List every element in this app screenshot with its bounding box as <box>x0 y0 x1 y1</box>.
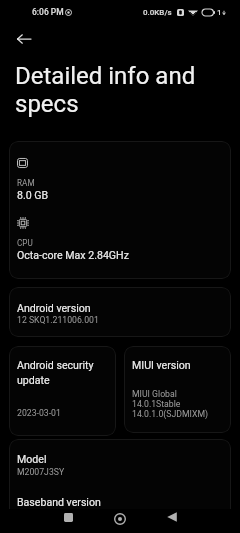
staticText: RAM <box>17 178 35 188</box>
button[interactable]: Back <box>9 24 38 53</box>
button[interactable]: Model <box>9 439 231 519</box>
button[interactable]: Android version <box>9 287 231 337</box>
staticText: 8.0 GB <box>17 189 49 201</box>
button[interactable]: Back <box>160 505 184 529</box>
button[interactable]: RAM <box>9 141 231 279</box>
staticText: 1 <box>217 8 222 17</box>
staticText: MIUI Global 14.0.1Stable 14.0.1.0(SJDMIX… <box>132 389 208 419</box>
staticText: Android version <box>17 302 91 314</box>
staticText: Octa-core Max 2.84GHz <box>17 249 129 261</box>
staticText: 6:06 PM <box>32 7 64 17</box>
button[interactable]: Home <box>108 507 132 531</box>
staticText: M2007J3SY <box>17 467 65 477</box>
button[interactable]: Android security update <box>9 346 116 436</box>
staticText: Android security update <box>17 359 94 386</box>
staticText: Model <box>17 453 47 465</box>
button[interactable]: MIUI version <box>124 346 231 433</box>
staticText: 0.0KB/s <box>143 8 172 17</box>
staticText: 2023-03-01 <box>17 408 61 418</box>
staticText: Baseband version <box>17 496 101 506</box>
staticText: Detailed info and specs <box>15 62 196 118</box>
staticText: 12 SKQ1.211006.001 <box>17 315 99 325</box>
staticText: MIUI version <box>132 359 191 371</box>
button[interactable]: Recent apps <box>56 505 80 529</box>
staticText: CPU <box>17 238 33 248</box>
